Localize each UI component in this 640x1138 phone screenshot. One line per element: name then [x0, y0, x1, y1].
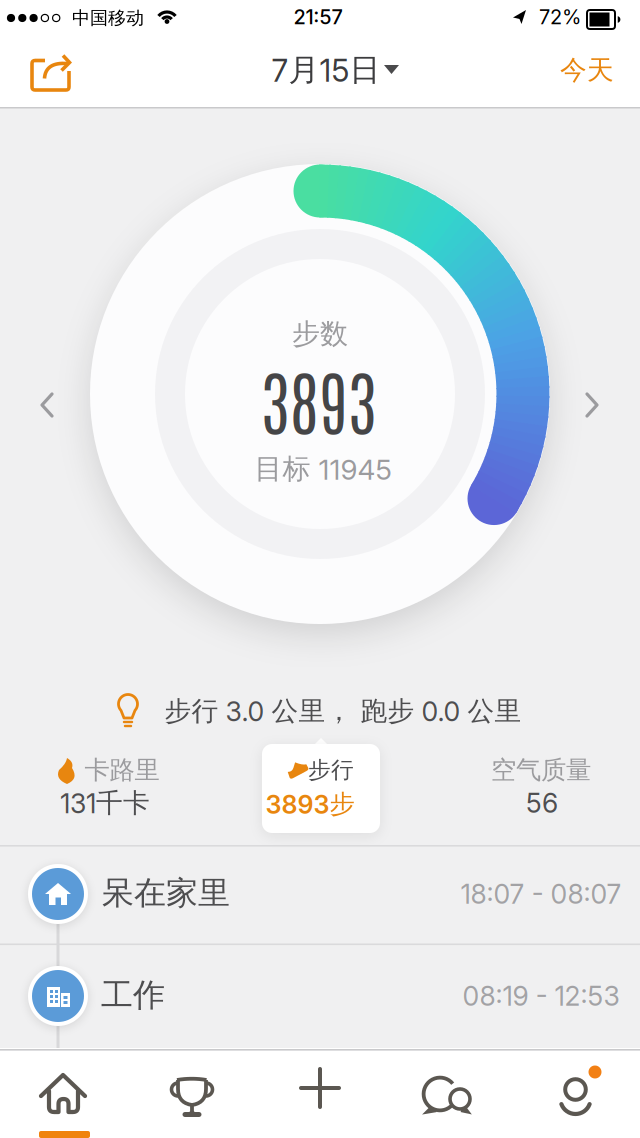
- button[interactable]: Achievements: [128, 1049, 256, 1138]
- staticText: 步行 3.0 公里， 跑步 0.0 公里: [164, 694, 521, 728]
- staticText: 18:07 - 08:07: [460, 878, 621, 910]
- button[interactable]: 7月15日: [260, 42, 408, 98]
- staticText: 卡路里: [84, 754, 159, 786]
- staticText: 步数: [292, 316, 348, 352]
- staticText: 步行: [308, 756, 354, 784]
- staticText: 呆在家里: [102, 873, 230, 913]
- button[interactable]: Share: [20, 43, 78, 101]
- staticText: 131千卡: [60, 786, 150, 820]
- staticText: 工作: [101, 975, 165, 1015]
- staticText: 56: [526, 787, 558, 819]
- staticText: 72%: [539, 5, 581, 29]
- button[interactable]: 今天: [542, 42, 632, 98]
- button[interactable]: Next day: [578, 390, 604, 420]
- button[interactable]: Home: [0, 1049, 128, 1138]
- button[interactable]: 步行: [262, 738, 380, 833]
- staticText: 3893: [261, 354, 377, 444]
- staticText: 空气质量: [491, 754, 591, 786]
- button[interactable]: Add: [256, 1049, 384, 1138]
- button[interactable]: Messages: [384, 1049, 512, 1138]
- button[interactable]: 呆在家里: [0, 845, 640, 943]
- button[interactable]: Profile: [512, 1049, 640, 1138]
- button[interactable]: Previous day: [35, 390, 61, 420]
- staticText: 7月15日: [271, 51, 380, 89]
- staticText: 目标 11945: [254, 451, 391, 487]
- staticText: 中国移动: [72, 7, 144, 29]
- staticText: 21:57: [293, 5, 342, 29]
- staticText: 今天: [560, 53, 614, 87]
- staticText: 08:19 - 12:53: [462, 980, 619, 1012]
- staticText: 3893步: [265, 788, 354, 820]
- button[interactable]: 工作: [0, 945, 640, 1043]
